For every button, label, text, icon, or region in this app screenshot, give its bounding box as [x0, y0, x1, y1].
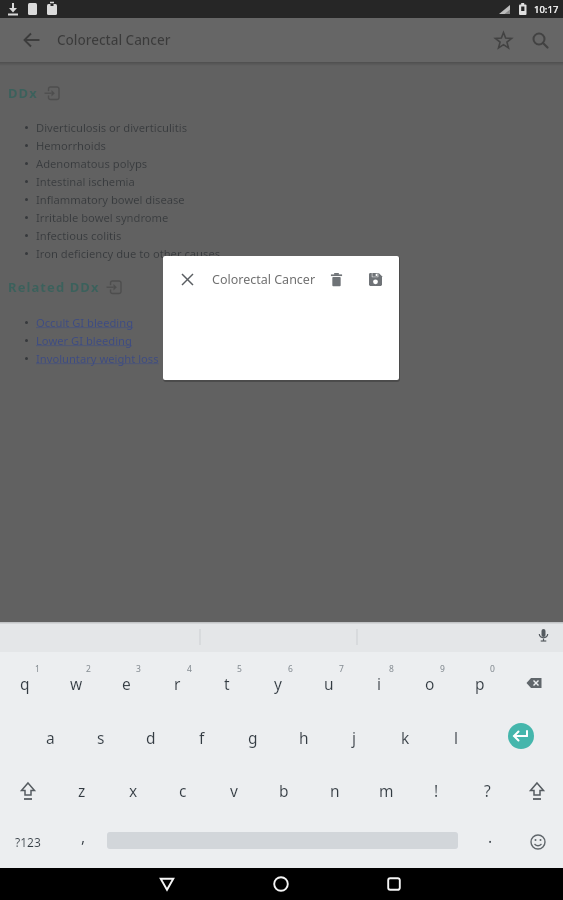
staticText: x	[129, 780, 138, 801]
staticText: z	[78, 780, 86, 801]
button: Hemorrhoids	[36, 138, 106, 153]
button[interactable]: p	[461, 657, 499, 709]
button: Diverticulosis or diverticulitis	[36, 120, 187, 135]
staticText: r	[174, 673, 181, 694]
staticText: u	[324, 673, 334, 694]
button[interactable]: j	[335, 711, 373, 763]
button[interactable]: c	[164, 764, 202, 816]
button[interactable]: Lower GI bleeding	[36, 333, 132, 348]
staticText: 1	[35, 663, 40, 675]
button: Iron deficiency due to other causes	[36, 246, 221, 261]
staticText: ?	[484, 780, 491, 801]
staticText: l	[454, 727, 458, 748]
button[interactable]: a	[31, 711, 69, 763]
button[interactable]: s	[82, 711, 120, 763]
staticText: p	[475, 673, 485, 694]
staticText: .	[488, 826, 493, 847]
button[interactable]: q	[6, 657, 44, 709]
staticText: g	[248, 727, 258, 748]
button[interactable]	[187, 868, 375, 900]
button[interactable]: v	[215, 764, 253, 816]
button[interactable]: !	[417, 764, 455, 816]
staticText: t	[224, 673, 230, 694]
button[interactable]: g	[234, 711, 272, 763]
button: Inflammatory bowel disease	[36, 192, 185, 207]
staticText: w	[70, 673, 83, 694]
button[interactable]	[521, 21, 559, 59]
button[interactable]: ?	[468, 764, 506, 816]
staticText: y	[274, 673, 282, 694]
staticText: 0	[490, 663, 495, 675]
staticText: f	[199, 727, 205, 748]
button[interactable]: h	[285, 711, 323, 763]
button[interactable]: u	[310, 657, 348, 709]
staticText: d	[146, 727, 156, 748]
staticText: i	[377, 673, 381, 694]
button[interactable]: k	[386, 711, 424, 763]
button[interactable]: w	[57, 657, 95, 709]
staticText: 9	[440, 663, 445, 675]
staticText: e	[122, 673, 131, 694]
staticText: 7	[339, 663, 344, 675]
button[interactable]: f	[183, 711, 221, 763]
button[interactable]	[363, 267, 387, 291]
staticText: 3	[136, 663, 141, 675]
staticText: c	[179, 780, 187, 801]
button[interactable]: m	[367, 764, 405, 816]
button[interactable]	[485, 22, 521, 58]
button[interactable]: Occult GI bleeding	[36, 315, 134, 330]
staticText: j	[352, 727, 356, 748]
button[interactable]	[106, 279, 122, 295]
staticText: 6	[288, 663, 293, 675]
staticText: q	[20, 673, 30, 694]
button[interactable]: ,	[65, 812, 101, 860]
staticText: DDx	[8, 84, 38, 102]
staticText: 2	[86, 663, 91, 675]
staticText: s	[97, 727, 105, 748]
staticText: n	[330, 780, 340, 801]
staticText: 10:17	[534, 3, 559, 16]
button[interactable]: .	[472, 812, 508, 860]
button: Irritable bowel syndrome	[36, 210, 169, 225]
staticText: b	[279, 780, 289, 801]
button[interactable]: x	[114, 764, 152, 816]
staticText: Colorectal Cancer	[57, 31, 171, 49]
button[interactable]: i	[360, 657, 398, 709]
staticText: v	[230, 780, 238, 801]
staticText: 5	[237, 663, 242, 675]
button[interactable]: d	[132, 711, 170, 763]
button[interactable]: Involuntary weight loss	[36, 351, 159, 366]
staticText: Colorectal Cancer	[212, 271, 316, 288]
button[interactable]: l	[437, 711, 475, 763]
staticText: m	[379, 780, 394, 801]
button[interactable]	[375, 868, 563, 900]
staticText: 8	[389, 663, 394, 675]
button[interactable]: n	[316, 764, 354, 816]
staticText: ,	[81, 826, 86, 847]
button[interactable]	[16, 24, 48, 56]
staticText: a	[46, 727, 55, 748]
staticText: Related DDx	[8, 278, 100, 296]
staticText: o	[425, 673, 435, 694]
button: Adenomatous polyps	[36, 156, 148, 171]
button[interactable]: ?123	[8, 818, 48, 866]
button: Intestinal ischemia	[36, 174, 135, 189]
button[interactable]: r	[158, 657, 196, 709]
button[interactable]	[324, 267, 348, 291]
button[interactable]: y	[259, 657, 297, 709]
button[interactable]: t	[208, 657, 246, 709]
button[interactable]	[175, 267, 199, 291]
staticText: !	[434, 780, 439, 801]
button[interactable]	[0, 868, 187, 900]
staticText: h	[299, 727, 309, 748]
button[interactable]: b	[265, 764, 303, 816]
button[interactable]	[44, 85, 60, 101]
staticText: 4	[187, 663, 192, 675]
staticText: ?123	[15, 834, 41, 850]
button: Infectious colitis	[36, 228, 122, 243]
button[interactable]: e	[107, 657, 145, 709]
button[interactable]: z	[63, 764, 101, 816]
button[interactable]: o	[411, 657, 449, 709]
staticText: k	[401, 727, 410, 748]
